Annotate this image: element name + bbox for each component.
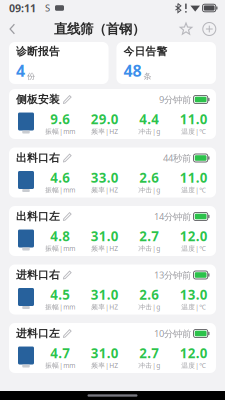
staticText: 振幅|mm [45,361,75,370]
staticText: 2.7 [139,344,159,362]
staticText: 4 [16,60,25,81]
button[interactable]: 出料口右 [9,147,216,197]
button[interactable]: 出料口左 [9,206,216,256]
staticText: 4.4 [139,110,159,128]
staticText: 振幅|mm [45,127,75,136]
staticText: 冲击|g [138,244,160,253]
staticText: 48 [123,60,141,81]
button[interactable]: Add [198,16,225,42]
staticText: 频率|HZ [91,244,118,253]
staticText: 直线筛（首钢） [54,21,145,37]
staticText: 冲击|g [138,127,160,136]
staticText: 11.0 [180,110,208,128]
staticText: 44秒前 [163,152,191,164]
staticText: 4.8 [50,227,70,245]
staticText: 12.0 [180,227,208,245]
staticText: 温度|℃ [181,244,206,253]
staticText: 29.0 [91,110,119,128]
staticText: 出料口左 [16,210,60,223]
staticText: 温度|℃ [181,302,206,311]
staticText: 31.0 [91,344,119,362]
staticText: 份 [27,71,35,81]
staticText: 进料口右 [16,268,60,281]
button[interactable]: 诊断报告 [9,42,108,84]
staticText: 2.6 [139,286,159,303]
staticText: 诊断报告 [16,45,60,58]
staticText: 出料口右 [16,151,60,164]
staticText: 10分钟前 [154,327,191,340]
staticText: 温度|℃ [181,127,206,136]
staticText: 13分钟前 [154,269,191,281]
staticText: 4.6 [50,169,70,186]
staticText: 条 [143,71,151,81]
staticText: 4.5 [50,286,70,303]
staticText: 进料口左 [16,327,60,340]
button[interactable]: 今日告警 [116,42,216,84]
staticText: 振幅|mm [45,302,75,311]
staticText: 14分钟前 [154,210,191,223]
staticText: 31.0 [91,286,119,303]
staticText: 冲击|g [138,185,160,194]
staticText: 2.7 [139,227,159,245]
staticText: 4.7 [50,344,70,362]
staticText: 今日告警 [123,45,167,58]
staticText: 温度|℃ [181,185,206,194]
staticText: 冲击|g [138,361,160,370]
staticText: 冲击|g [138,302,160,311]
button[interactable]: Favorite [174,16,198,42]
staticText: 9.6 [50,110,70,128]
staticText: 频率|HZ [91,302,118,311]
staticText: S [45,2,50,14]
staticText: 振幅|mm [45,244,75,253]
staticText: 31.0 [91,227,119,245]
staticText: 9分钟前 [159,93,191,106]
staticText: 侧板安装 [16,93,60,106]
button[interactable]: 进料口左 [9,323,216,373]
staticText: 12.0 [180,344,208,362]
staticText: 频率|HZ [91,185,118,194]
button[interactable]: 进料口右 [9,264,216,314]
staticText: 频率|HZ [91,127,118,136]
button[interactable]: 侧板安装 [9,89,216,139]
staticText: 频率|HZ [91,361,118,370]
staticText: 13.0 [180,286,208,303]
staticText: 11.0 [180,169,208,186]
staticText: 2.6 [139,169,159,186]
staticText: 温度|℃ [181,361,206,370]
staticText: 33.0 [91,169,119,186]
staticText: 09:11 [9,1,36,15]
staticText: 振幅|mm [45,185,75,194]
button[interactable]: Back [0,16,24,42]
